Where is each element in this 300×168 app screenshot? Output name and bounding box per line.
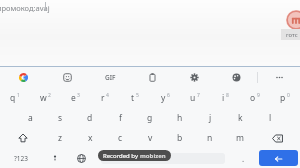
button[interactable]: e	[60, 87, 90, 108]
button[interactable]: a	[15, 108, 45, 128]
button[interactable]: p	[270, 87, 300, 108]
button[interactable]: m	[225, 128, 255, 148]
staticText: y	[161, 92, 166, 104]
staticText: 7	[197, 92, 200, 99]
staticText: f	[119, 112, 122, 124]
staticText: 4	[106, 92, 109, 99]
staticText: 0	[287, 92, 290, 99]
button[interactable]: z	[45, 128, 75, 148]
staticText: w	[40, 92, 47, 104]
staticText: 6	[167, 92, 170, 99]
staticText: ?123	[14, 154, 28, 163]
staticText: 5	[136, 92, 139, 99]
button[interactable]: g	[135, 108, 165, 128]
staticText: q	[10, 92, 16, 104]
staticText: h	[177, 112, 183, 124]
button[interactable]: Settings	[173, 67, 215, 87]
staticText: 9	[257, 92, 260, 99]
staticText: e	[71, 92, 76, 104]
button[interactable]: Enter	[259, 150, 298, 166]
button[interactable]: r	[90, 87, 120, 108]
button[interactable]: .	[230, 148, 257, 168]
button[interactable]: q	[0, 87, 30, 108]
button[interactable]: Clipboard	[131, 67, 173, 87]
staticText: b	[177, 132, 183, 144]
button[interactable]: u	[180, 87, 210, 108]
button[interactable]: GIF	[89, 67, 131, 87]
staticText: k	[238, 112, 243, 124]
staticText: a	[28, 112, 33, 124]
staticText: u	[190, 92, 196, 104]
button[interactable]: k	[225, 108, 255, 128]
staticText: g	[147, 112, 153, 124]
button[interactable]: l	[255, 108, 285, 128]
staticText: n	[207, 132, 213, 144]
button[interactable]: Google Assistant	[0, 67, 46, 87]
button[interactable]: Logo	[286, 10, 300, 30]
button[interactable]: готс	[281, 29, 300, 40]
button[interactable]: Shift	[0, 128, 45, 148]
staticText: v	[148, 132, 153, 144]
staticText: x	[88, 132, 93, 144]
staticText: 2	[48, 92, 51, 99]
button[interactable]: f	[105, 108, 135, 128]
button[interactable]: Backspace	[255, 128, 300, 148]
staticText: готс	[286, 31, 298, 39]
button[interactable]: Language	[68, 148, 95, 168]
staticText: t	[131, 92, 135, 104]
staticText: i	[222, 92, 225, 104]
button[interactable]: v	[135, 128, 165, 148]
button[interactable]: t	[120, 87, 150, 108]
staticText: 1	[17, 92, 20, 99]
button[interactable]: b	[165, 128, 195, 148]
button[interactable]: h	[165, 108, 195, 128]
staticText: GIF	[105, 73, 116, 82]
staticText: z	[58, 132, 62, 144]
staticText: s	[58, 112, 63, 124]
button[interactable]: Comma	[41, 148, 68, 168]
button[interactable]: Space	[95, 148, 230, 168]
button[interactable]: d	[75, 108, 105, 128]
staticText: mobizen	[140, 152, 166, 160]
button[interactable]: More options	[258, 67, 300, 87]
button[interactable]: y	[150, 87, 180, 108]
button[interactable]: Stickers	[46, 67, 89, 87]
staticText: l	[269, 112, 272, 124]
staticText: промокод:avaj	[0, 3, 50, 13]
button[interactable]: w	[30, 87, 60, 108]
staticText: p	[280, 92, 286, 104]
staticText: o	[250, 92, 256, 104]
button[interactable]: n	[195, 128, 225, 148]
staticText: 8	[226, 92, 229, 99]
button[interactable]: j	[195, 108, 225, 128]
staticText: .	[242, 153, 245, 164]
staticText: j	[209, 112, 212, 124]
button[interactable]: i	[210, 87, 240, 108]
button[interactable]: o	[240, 87, 270, 108]
button[interactable]: Themes	[215, 67, 257, 87]
button[interactable]: x	[75, 128, 105, 148]
staticText: 3	[77, 92, 80, 99]
staticText: c	[118, 132, 123, 144]
staticText: m	[236, 132, 244, 144]
staticText: d	[87, 112, 93, 124]
staticText: Recorded by	[103, 152, 140, 160]
button[interactable]: s	[45, 108, 75, 128]
button[interactable]: ?123	[0, 148, 41, 168]
button[interactable]: c	[105, 128, 135, 148]
staticText: r	[101, 92, 105, 104]
